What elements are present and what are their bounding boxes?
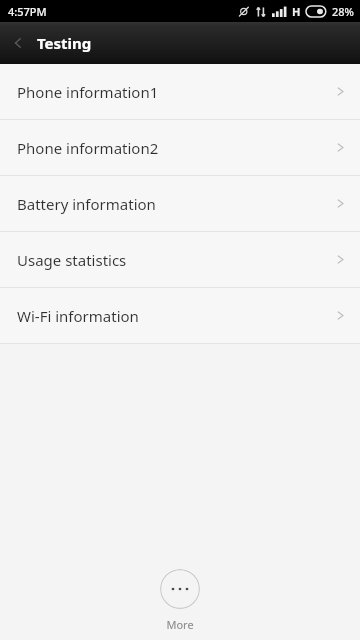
button[interactable]: Back: [0, 25, 36, 61]
staticText: Wi-Fi information: [17, 306, 139, 326]
staticText: Battery information: [17, 194, 156, 214]
button[interactable]: Usage statistics: [0, 232, 360, 287]
staticText: 28%: [332, 4, 354, 19]
staticText: 4:57PM: [8, 4, 47, 19]
staticText: H: [292, 4, 301, 19]
button[interactable]: Phone information2: [0, 120, 360, 175]
button[interactable]: Battery information: [0, 176, 360, 231]
staticText: Usage statistics: [17, 250, 127, 270]
button[interactable]: Wi-Fi information: [0, 288, 360, 343]
staticText: Testing: [37, 33, 92, 53]
button[interactable]: More options: [160, 569, 200, 609]
staticText: Phone information1: [17, 82, 159, 102]
staticText: Phone information2: [17, 138, 159, 158]
button[interactable]: Phone information1: [0, 64, 360, 119]
staticText: More: [166, 617, 194, 632]
